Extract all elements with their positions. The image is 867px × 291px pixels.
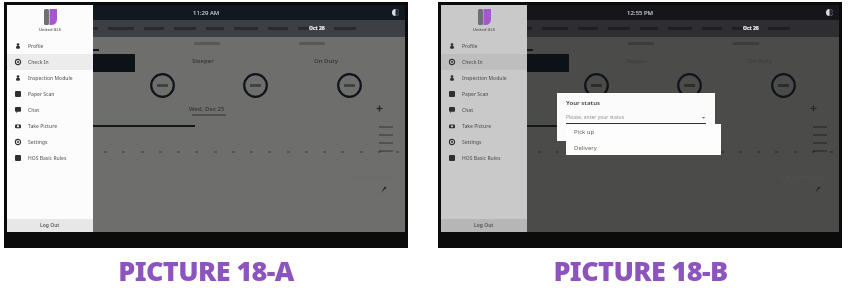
button[interactable]: HOS Basic Rules bbox=[7, 150, 93, 166]
staticText: Pick up bbox=[574, 128, 595, 136]
button[interactable]: Take Picture bbox=[7, 118, 93, 134]
staticText: Please, enter your status bbox=[566, 114, 701, 121]
button[interactable]: Check In bbox=[7, 54, 93, 70]
staticText: Log Out bbox=[474, 222, 494, 229]
button[interactable]: Pick up bbox=[566, 124, 721, 140]
staticText: Chat bbox=[462, 107, 474, 114]
button[interactable]: Take Picture bbox=[441, 118, 527, 134]
button[interactable]: Paper Scan bbox=[7, 86, 93, 102]
button[interactable]: Chat bbox=[7, 102, 93, 118]
staticText: Chat bbox=[28, 107, 40, 114]
button[interactable]: Paper Scan bbox=[441, 86, 527, 102]
staticText: PICTURE 18-B bbox=[553, 252, 728, 289]
staticText: Sleeper bbox=[626, 57, 648, 65]
staticText: Oct 26 bbox=[743, 25, 759, 32]
other: Open dropdown bbox=[701, 115, 706, 120]
staticText: HOS Basic Rules bbox=[28, 155, 67, 162]
button[interactable]: Delivery bbox=[566, 140, 721, 155]
staticText: Log Out bbox=[40, 222, 60, 229]
staticText: Profile bbox=[462, 43, 478, 50]
staticText: On Duty bbox=[748, 57, 773, 65]
staticText: Check In bbox=[28, 59, 49, 66]
button[interactable]: Log Out bbox=[441, 219, 527, 232]
staticText: Paper Scan bbox=[28, 91, 55, 98]
staticText: Settings bbox=[28, 139, 48, 146]
staticText: Paper Scan bbox=[462, 91, 489, 98]
staticText: PICTURE 18-A bbox=[118, 252, 294, 289]
button[interactable]: Check In bbox=[441, 54, 527, 70]
staticText: Check In bbox=[462, 59, 483, 66]
staticText: Take Picture bbox=[462, 123, 492, 130]
staticText: 12:55 PM bbox=[627, 9, 653, 17]
button[interactable]: Profile bbox=[7, 38, 93, 54]
button[interactable]: Settings bbox=[7, 134, 93, 150]
staticText: HOS Basic Rules bbox=[462, 155, 501, 162]
button[interactable]: Inspection Module bbox=[7, 70, 93, 86]
staticText: United GLS bbox=[39, 27, 61, 32]
staticText: Wed, Dec 25 bbox=[189, 105, 225, 113]
button[interactable]: Log Out bbox=[7, 219, 93, 232]
staticText: Inspection Module bbox=[28, 75, 73, 82]
staticText: Profile bbox=[28, 43, 44, 50]
button[interactable]: HOS Basic Rules bbox=[441, 150, 527, 166]
staticText: Settings bbox=[462, 139, 482, 146]
other: Edit bbox=[813, 186, 822, 195]
staticText: United GLS bbox=[473, 27, 495, 32]
staticText: Your status bbox=[566, 99, 601, 107]
button[interactable]: Chat bbox=[441, 102, 527, 118]
staticText: Sleeper bbox=[192, 57, 214, 65]
staticText: Delivery bbox=[574, 144, 597, 152]
button[interactable]: Settings bbox=[441, 134, 527, 150]
staticText: Inspection Module bbox=[462, 75, 507, 82]
staticText: Take Picture bbox=[28, 123, 58, 130]
other: Edit bbox=[379, 186, 388, 195]
staticText: On Duty bbox=[314, 57, 339, 65]
button[interactable]: Profile bbox=[441, 38, 527, 54]
staticText: 11:29 AM bbox=[193, 9, 220, 17]
button[interactable]: Inspection Module bbox=[441, 70, 527, 86]
staticText: Oct 26 bbox=[309, 25, 325, 32]
